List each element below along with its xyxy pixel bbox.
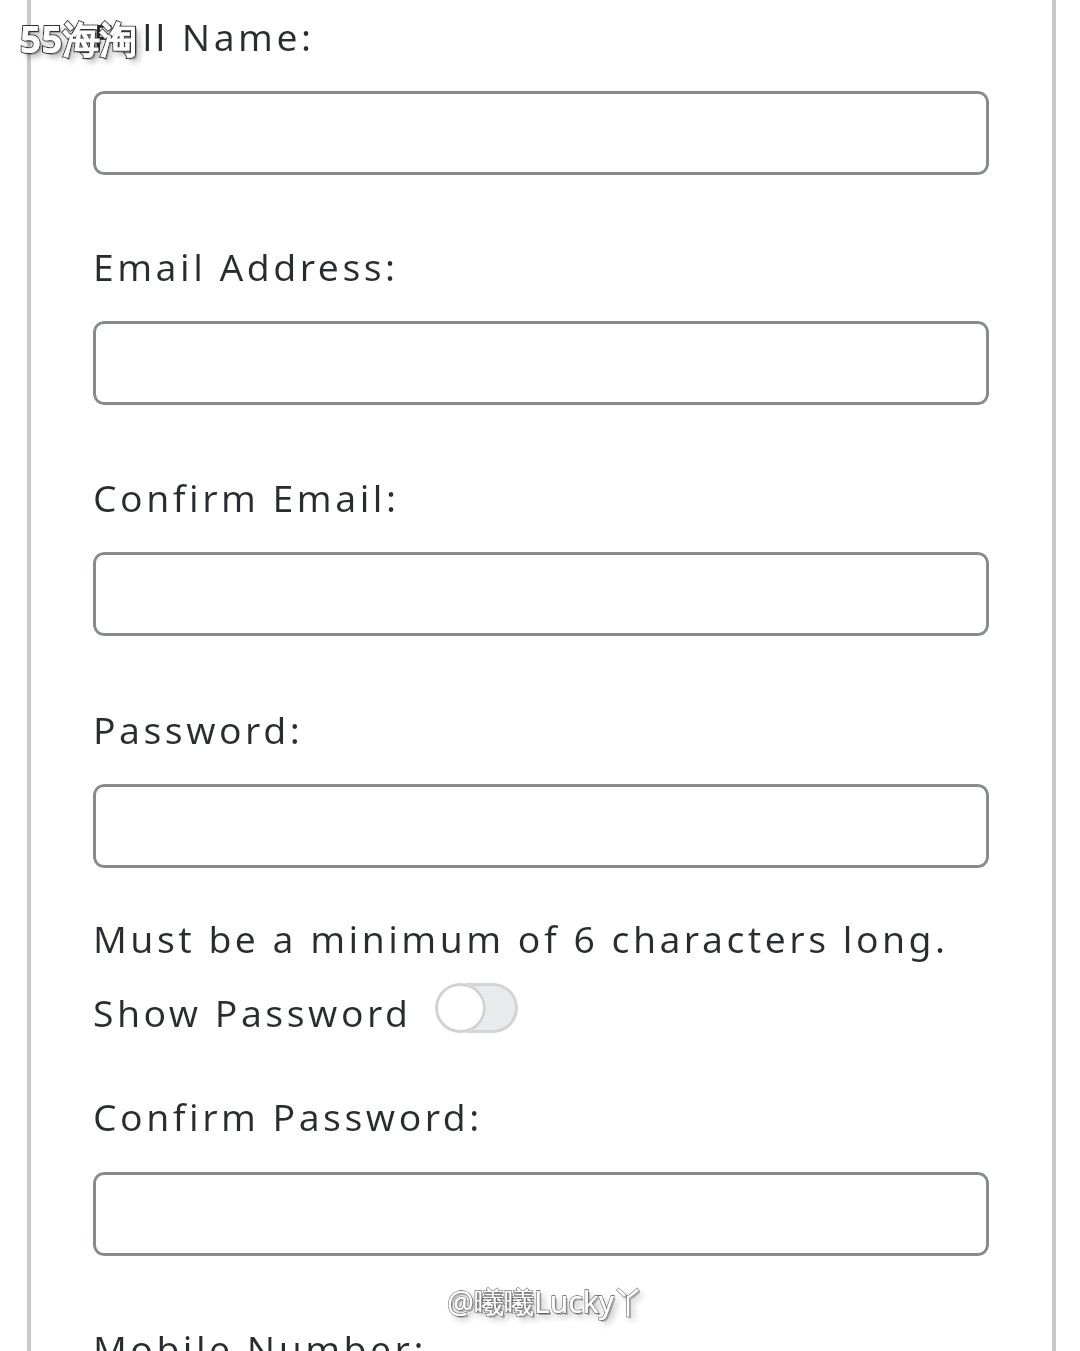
staticText: Confirm Email: (93, 472, 400, 523)
staticText: Password: (93, 704, 304, 755)
button[interactable]: Show Password toggle (435, 983, 518, 1033)
button[interactable] (93, 784, 989, 868)
staticText: @曦曦Lucky丫 (447, 1281, 644, 1322)
button[interactable] (93, 552, 989, 636)
staticText: Mobile Number: (93, 1323, 427, 1351)
button[interactable] (93, 321, 989, 405)
button[interactable] (93, 1172, 989, 1256)
staticText: @曦曦Lucky丫 (449, 1283, 646, 1324)
staticText: Email Address: (93, 241, 399, 292)
staticText: @曦曦Lucky丫 (447, 1281, 644, 1322)
staticText: 55海淘 (20, 13, 137, 64)
staticText: Full Name: (93, 11, 315, 62)
staticText: 55海淘 (22, 15, 139, 66)
staticText: Confirm Password: (93, 1091, 483, 1142)
button[interactable] (93, 91, 989, 175)
staticText: Show Password (93, 987, 412, 1038)
staticText: 55海淘 (20, 13, 137, 64)
staticText: Must be a minimum of 6 characters long. (93, 913, 949, 964)
